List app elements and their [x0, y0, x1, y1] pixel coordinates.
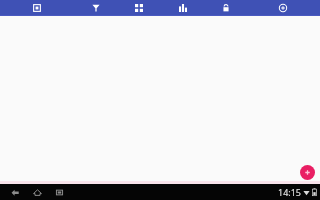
button[interactable]: Capture [26, 0, 48, 15]
button[interactable]: Add [272, 0, 294, 15]
button[interactable]: Back [4, 184, 26, 200]
button[interactable]: Grid view [128, 0, 150, 15]
staticText: 14:15 [277, 186, 301, 198]
button[interactable]: Filter [85, 0, 107, 15]
button[interactable]: Recent apps [48, 184, 70, 200]
button[interactable]: Add entry [300, 165, 315, 180]
button[interactable]: Home [26, 184, 48, 200]
button[interactable]: Lock [215, 0, 237, 15]
button[interactable]: Statistics [172, 0, 194, 15]
